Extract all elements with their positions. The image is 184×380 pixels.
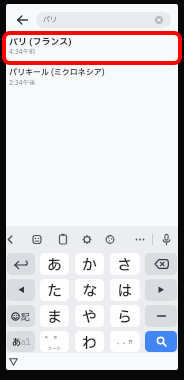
staticText: 記 — [21, 310, 31, 323]
button[interactable] — [145, 331, 177, 352]
button[interactable]: や — [75, 305, 104, 327]
button[interactable]: は — [110, 279, 140, 301]
staticText: 2:34午後 — [9, 78, 36, 87]
button[interactable] — [7, 279, 35, 301]
button[interactable]: ゛゜ — [40, 331, 69, 352]
button[interactable] — [155, 16, 163, 24]
button[interactable]: あ — [40, 253, 69, 275]
button[interactable]: パリキール (ミクロネシア) — [9, 67, 178, 94]
staticText: た — [47, 280, 63, 301]
button[interactable] — [7, 253, 35, 275]
button[interactable]: わ — [75, 331, 104, 352]
button[interactable]: な — [75, 279, 104, 301]
staticText: や — [82, 306, 98, 327]
button[interactable] — [145, 279, 177, 301]
button[interactable]: パリ — [36, 12, 171, 28]
button[interactable]: 記 — [7, 305, 35, 327]
button[interactable] — [12, 10, 32, 30]
staticText: は — [117, 280, 133, 301]
staticText: ま — [47, 306, 63, 327]
button[interactable]: パリ (フランス) — [6, 31, 178, 65]
button[interactable]: ら — [110, 305, 140, 327]
staticText: 4:34午前 — [9, 47, 36, 56]
staticText: あa1 — [12, 335, 31, 348]
staticText: さ — [117, 254, 133, 275]
staticText: 大⇔小 — [48, 346, 61, 352]
button[interactable]: ま — [40, 305, 69, 327]
staticText: あ — [47, 254, 63, 275]
button[interactable]: あa1 — [7, 331, 35, 352]
button[interactable]: 、。?! — [110, 331, 140, 352]
button[interactable]: た — [40, 279, 69, 301]
button[interactable]: さ — [110, 253, 140, 275]
staticText: わ — [82, 332, 98, 352]
staticText: パリ — [43, 15, 57, 25]
button[interactable] — [145, 305, 177, 327]
staticText: 、。?! — [117, 338, 133, 346]
staticText: か — [82, 254, 98, 275]
button[interactable]: か — [75, 253, 104, 275]
staticText: な — [82, 280, 98, 301]
button[interactable] — [145, 253, 177, 275]
button[interactable] — [8, 356, 19, 367]
staticText: ら — [117, 306, 133, 327]
staticText: ゛゜ — [45, 334, 64, 347]
staticText: パリキール (ミクロネシア) — [9, 67, 105, 79]
staticText: パリ (フランス) — [9, 35, 72, 48]
